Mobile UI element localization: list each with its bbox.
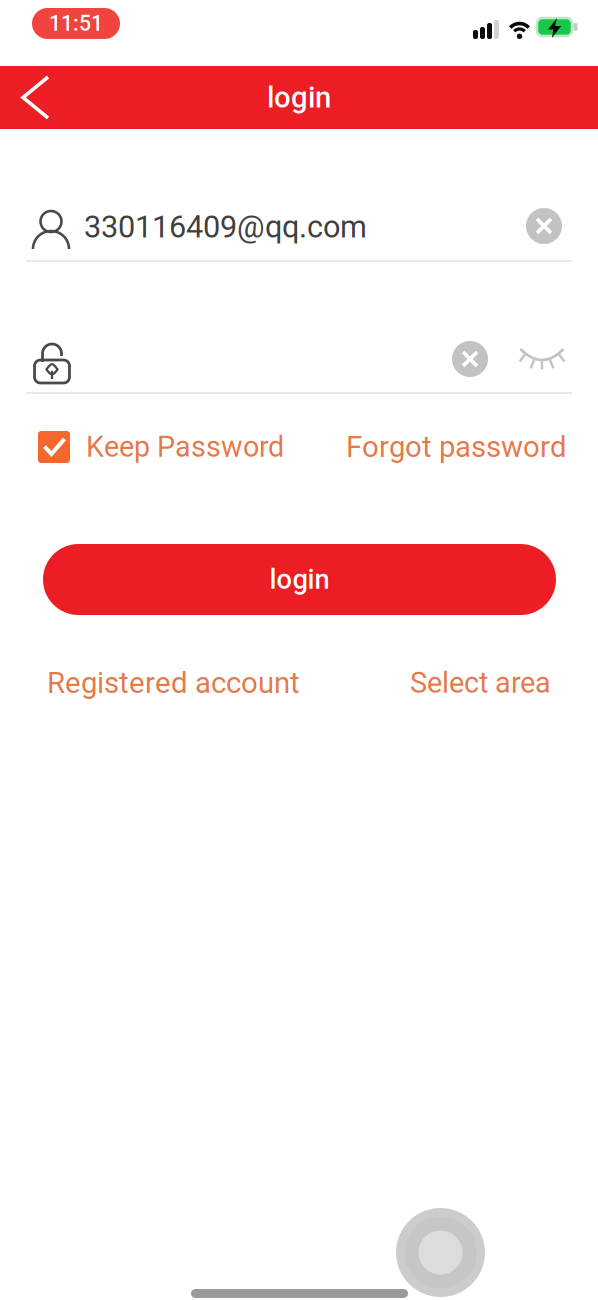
button[interactable]: AssistiveTouch — [396, 1208, 485, 1297]
button[interactable]: Forgot password — [346, 430, 567, 464]
button[interactable]: Show password — [512, 333, 572, 385]
button[interactable]: Clear text — [518, 200, 570, 252]
staticText: Select area — [410, 666, 551, 700]
staticText: 11:51 — [49, 11, 103, 36]
staticText: Forgot password — [346, 430, 567, 464]
button[interactable]: Clear text — [444, 333, 496, 385]
staticText: Registered account — [47, 666, 300, 700]
staticText: login — [269, 563, 329, 595]
button[interactable]: Registered account — [47, 666, 300, 700]
staticText: login — [267, 80, 331, 115]
button[interactable]: Back — [0, 66, 71, 129]
button[interactable]: Keep Password — [38, 430, 284, 464]
staticText: Keep Password — [86, 430, 284, 464]
button[interactable]: Select area — [410, 666, 551, 700]
button[interactable]: 330116409@qq.com — [84, 198, 514, 256]
button[interactable]: login — [43, 544, 556, 615]
staticText: 330116409@qq.com — [84, 209, 367, 245]
